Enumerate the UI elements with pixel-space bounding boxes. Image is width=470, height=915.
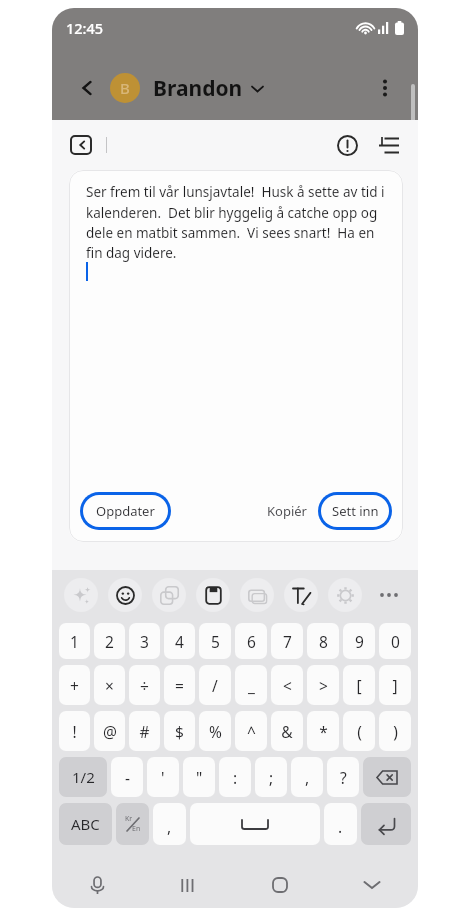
button[interactable]: + xyxy=(59,665,90,705)
staticText: Brandon xyxy=(153,74,243,103)
button[interactable]: , xyxy=(153,803,186,845)
button[interactable]: $ xyxy=(164,711,195,751)
button[interactable]: 5 xyxy=(199,623,231,659)
button[interactable]: - xyxy=(111,757,143,797)
staticText: - xyxy=(125,767,130,788)
button[interactable]: ( xyxy=(343,711,375,751)
button[interactable]: ) xyxy=(379,711,411,751)
staticText: + xyxy=(70,675,79,696)
button[interactable]: Contact avatar xyxy=(110,73,140,103)
button[interactable]: > xyxy=(307,665,339,705)
staticText: = xyxy=(175,675,184,696)
staticText: @ xyxy=(103,721,117,742)
button[interactable]: < xyxy=(271,665,303,705)
staticText: 2 xyxy=(105,631,114,652)
button[interactable]: More options xyxy=(368,71,402,105)
button[interactable]: 9 xyxy=(343,623,375,659)
button[interactable]: ^ xyxy=(235,711,267,751)
button[interactable]: 6 xyxy=(235,623,267,659)
button[interactable]: More xyxy=(372,578,406,612)
staticText: 5 xyxy=(211,631,220,652)
button[interactable]: Emoji xyxy=(108,578,142,612)
staticText: . xyxy=(338,816,343,837)
staticText: ? xyxy=(340,767,347,788)
staticText: 1 xyxy=(70,631,79,652)
button[interactable]: [ xyxy=(343,665,375,705)
staticText: ( xyxy=(357,721,362,742)
button[interactable]: Backspace xyxy=(363,757,411,797)
staticText: ; xyxy=(269,767,274,788)
button[interactable]: * xyxy=(307,711,339,751)
button[interactable]: % xyxy=(199,711,231,751)
button[interactable]: Voice input xyxy=(52,862,143,908)
staticText: : xyxy=(233,767,238,788)
staticText: ^ xyxy=(247,721,256,742)
button[interactable]: Kopiér xyxy=(263,496,311,526)
button[interactable]: Translate xyxy=(152,578,186,612)
button[interactable]: × xyxy=(94,665,125,705)
button[interactable]: ; xyxy=(255,757,287,797)
staticText: > xyxy=(319,675,328,696)
button[interactable]: Home xyxy=(234,862,326,908)
staticText: 7 xyxy=(283,631,292,652)
button[interactable]: 3 xyxy=(129,623,160,659)
button[interactable]: & xyxy=(271,711,303,751)
staticText: ÷ xyxy=(140,675,149,696)
button[interactable]: Writing assist xyxy=(64,578,98,612)
button[interactable]: 4 xyxy=(164,623,195,659)
button[interactable]: _ xyxy=(235,665,267,705)
button[interactable]: Hide keyboard xyxy=(326,862,418,908)
button[interactable]: 0 xyxy=(379,623,411,659)
button[interactable]: , xyxy=(291,757,323,797)
button[interactable]: 7 xyxy=(271,623,303,659)
staticText: 12:45 xyxy=(66,18,104,38)
button[interactable]: / xyxy=(199,665,231,705)
staticText: $ xyxy=(175,721,184,742)
staticText: " xyxy=(196,767,203,788)
button[interactable]: Language xyxy=(116,803,149,845)
staticText: # xyxy=(139,721,150,742)
button[interactable]: Keyboard mode xyxy=(240,578,274,612)
button[interactable]: ? xyxy=(327,757,359,797)
button[interactable]: Oppdater xyxy=(83,495,168,527)
staticText: _ xyxy=(248,675,255,696)
button[interactable]: Handwriting xyxy=(284,578,318,612)
button[interactable]: " xyxy=(183,757,215,797)
button[interactable]: 8 xyxy=(307,623,339,659)
staticText: Kr xyxy=(125,814,133,824)
button[interactable]: Settings xyxy=(376,132,402,158)
staticText: Sett inn xyxy=(332,502,379,520)
button[interactable]: = xyxy=(164,665,195,705)
button[interactable]: @ xyxy=(94,711,125,751)
button[interactable]: ' xyxy=(147,757,179,797)
button[interactable]: ÷ xyxy=(129,665,160,705)
button[interactable]: ] xyxy=(379,665,411,705)
staticText: ) xyxy=(393,721,398,742)
button[interactable]: Info xyxy=(334,132,360,158)
button[interactable]: 1 xyxy=(59,623,90,659)
button[interactable]: Enter xyxy=(361,803,411,845)
staticText: × xyxy=(105,675,114,696)
button[interactable]: 2 xyxy=(94,623,125,659)
button[interactable]: Sett inn xyxy=(321,495,389,527)
staticText: [ xyxy=(356,675,362,696)
button[interactable]: Brandon xyxy=(153,74,264,103)
button[interactable]: Back xyxy=(70,71,104,105)
button[interactable]: Clipboard xyxy=(196,578,230,612)
button[interactable]: ABC xyxy=(59,803,112,845)
button[interactable]: Recents xyxy=(143,862,234,908)
button[interactable]: 1/2 xyxy=(59,757,107,797)
button[interactable]: Space xyxy=(190,803,320,845)
button[interactable]: Collapse xyxy=(70,135,92,155)
button[interactable]: . xyxy=(324,803,357,845)
button[interactable]: # xyxy=(129,711,160,751)
staticText: & xyxy=(281,721,293,742)
button[interactable]: Keyboard settings xyxy=(328,578,362,612)
button[interactable]: ! xyxy=(59,711,90,751)
button[interactable]: : xyxy=(219,757,251,797)
staticText: Ser frem til vår lunsjavtale! Husk å set… xyxy=(86,183,389,262)
staticText: % xyxy=(209,721,222,742)
staticText: 8 xyxy=(319,631,328,652)
staticText: En xyxy=(132,824,141,834)
staticText: / xyxy=(212,675,218,696)
